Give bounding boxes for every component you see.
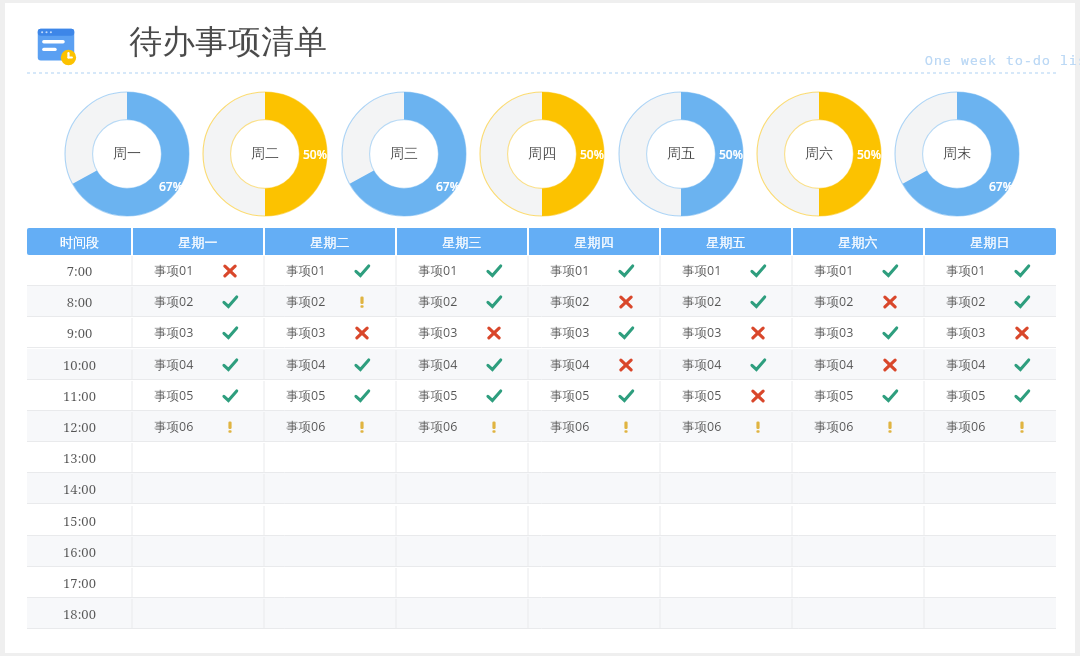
button[interactable]: 事项03	[528, 317, 660, 348]
button[interactable]: 事项04	[528, 349, 660, 380]
staticText: 事项01	[682, 262, 722, 279]
button[interactable]: 周五	[618, 91, 744, 217]
button[interactable]: 事项01	[660, 255, 792, 286]
button[interactable]: 事项06	[528, 411, 660, 442]
staticText: 67%	[989, 178, 1013, 194]
button[interactable]: 周一	[64, 91, 190, 217]
button[interactable]: 星期五	[660, 234, 792, 250]
staticText: 50%	[857, 146, 881, 162]
staticText: 事项01	[946, 262, 986, 279]
button[interactable]: 事项02	[396, 286, 528, 317]
button[interactable]: 事项04	[396, 349, 528, 380]
button[interactable]: 事项02	[264, 286, 396, 317]
staticText: 67%	[159, 178, 183, 194]
staticText: 50%	[719, 146, 743, 162]
staticText: 事项05	[550, 387, 590, 404]
button[interactable]: 星期四	[528, 234, 660, 250]
button[interactable]: 星期一	[132, 234, 264, 250]
button[interactable]: 11:00	[27, 387, 132, 405]
staticText: 事项06	[286, 418, 326, 435]
button[interactable]: 事项05	[396, 380, 528, 411]
staticText: 事项02	[682, 293, 722, 310]
button[interactable]: 星期三	[396, 234, 528, 250]
button[interactable]: 星期六	[792, 234, 924, 250]
staticText: 事项06	[418, 418, 458, 435]
button[interactable]: 事项04	[264, 349, 396, 380]
button[interactable]: 周四	[479, 91, 605, 217]
staticText: 事项03	[946, 324, 986, 341]
staticText: 事项02	[946, 293, 986, 310]
button[interactable]: 10:00	[27, 356, 132, 374]
button[interactable]: 事项05	[528, 380, 660, 411]
button[interactable]: 事项05	[792, 380, 924, 411]
button[interactable]: 9:00	[27, 324, 132, 342]
staticText: 事项06	[550, 418, 590, 435]
button[interactable]: 12:00	[27, 418, 132, 436]
button[interactable]: 15:00	[27, 512, 132, 530]
button[interactable]: 事项01	[264, 255, 396, 286]
staticText: 事项04	[946, 356, 986, 373]
button[interactable]: 8:00	[27, 293, 132, 311]
button[interactable]: 事项06	[264, 411, 396, 442]
button[interactable]: 事项04	[792, 349, 924, 380]
staticText: 事项03	[814, 324, 854, 341]
staticText: 周二	[251, 145, 279, 163]
button[interactable]: 事项06	[132, 411, 264, 442]
button[interactable]: 事项05	[660, 380, 792, 411]
button[interactable]: 时间段	[27, 234, 132, 250]
button[interactable]: 事项03	[264, 317, 396, 348]
staticText: 事项04	[814, 356, 854, 373]
staticText: 事项02	[550, 293, 590, 310]
button[interactable]: 事项01	[792, 255, 924, 286]
button[interactable]: 16:00	[27, 543, 132, 561]
button[interactable]: 事项02	[924, 286, 1056, 317]
button[interactable]: 17:00	[27, 574, 132, 592]
button[interactable]: 事项01	[396, 255, 528, 286]
staticText: 50%	[303, 146, 327, 162]
button[interactable]: 星期二	[264, 234, 396, 250]
button[interactable]: 事项02	[132, 286, 264, 317]
staticText: 事项02	[286, 293, 326, 310]
button[interactable]: 周六	[756, 91, 882, 217]
button[interactable]: 13:00	[27, 449, 132, 467]
button[interactable]: 事项02	[660, 286, 792, 317]
button[interactable]: 事项06	[924, 411, 1056, 442]
staticText: 事项04	[550, 356, 590, 373]
button[interactable]: 事项03	[924, 317, 1056, 348]
staticText: 周六	[805, 145, 833, 163]
button[interactable]: 星期日	[924, 234, 1056, 250]
button[interactable]: 14:00	[27, 480, 132, 498]
button[interactable]: 事项05	[132, 380, 264, 411]
staticText: 事项03	[550, 324, 590, 341]
staticText: 周三	[390, 145, 418, 163]
staticText: 周五	[667, 145, 695, 163]
button[interactable]: 事项06	[792, 411, 924, 442]
button[interactable]: 周二	[202, 91, 328, 217]
button[interactable]: To-do list icon	[32, 22, 80, 70]
button[interactable]: 事项04	[924, 349, 1056, 380]
button[interactable]: 事项05	[924, 380, 1056, 411]
staticText: 周末	[943, 145, 971, 163]
button[interactable]: 事项05	[264, 380, 396, 411]
staticText: One week to-do list	[925, 51, 1080, 69]
button[interactable]: 7:00	[27, 262, 132, 280]
button[interactable]: 事项01	[924, 255, 1056, 286]
button[interactable]: 事项04	[132, 349, 264, 380]
button[interactable]: 周末	[894, 91, 1020, 217]
button[interactable]: 事项01	[132, 255, 264, 286]
button[interactable]: 18:00	[27, 605, 132, 623]
staticText: 事项06	[814, 418, 854, 435]
button[interactable]: 事项03	[792, 317, 924, 348]
button[interactable]: 周三	[341, 91, 467, 217]
button[interactable]: 事项06	[396, 411, 528, 442]
button[interactable]: 事项01	[528, 255, 660, 286]
button[interactable]: 事项03	[396, 317, 528, 348]
staticText: 事项02	[418, 293, 458, 310]
button[interactable]: 事项03	[660, 317, 792, 348]
button[interactable]: 事项02	[528, 286, 660, 317]
button[interactable]: 事项02	[792, 286, 924, 317]
button[interactable]: 事项03	[132, 317, 264, 348]
button[interactable]: 事项04	[660, 349, 792, 380]
button[interactable]: 事项06	[660, 411, 792, 442]
staticText: 事项04	[154, 356, 194, 373]
